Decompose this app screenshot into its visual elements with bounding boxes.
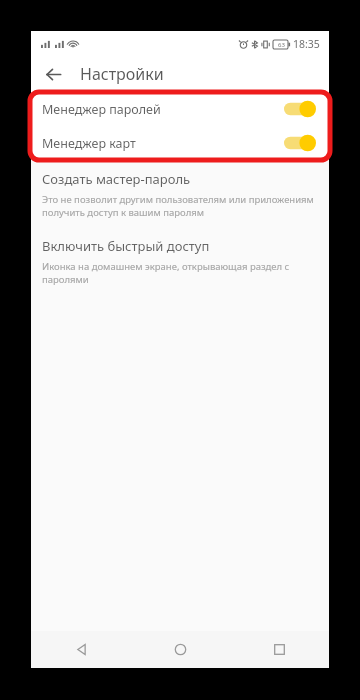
button[interactable]: Менеджер карт (31, 126, 329, 160)
staticText: Включить быстрый доступ (42, 237, 210, 255)
button[interactable]: Back (38, 59, 68, 89)
staticText: 63 (278, 41, 285, 49)
button[interactable]: Включить быстрый доступ (31, 233, 329, 290)
button[interactable]: Home (131, 631, 230, 668)
button[interactable]: Recents (230, 631, 329, 668)
staticText: Это не позволит другим пользователям или… (42, 193, 314, 219)
button[interactable]: Создать мастер-пароль (31, 166, 329, 223)
button[interactable]: Back (31, 631, 131, 668)
staticText: Иконка на домашнем экране, открывающая р… (42, 260, 290, 286)
staticText: 18:35 (293, 37, 320, 51)
staticText: Менеджер карт (42, 135, 284, 152)
staticText: Менеджер паролей (42, 101, 284, 118)
button[interactable]: Менеджер паролей (31, 92, 329, 126)
staticText: Настройки (80, 63, 164, 85)
staticText: Создать мастер-пароль (42, 170, 191, 188)
